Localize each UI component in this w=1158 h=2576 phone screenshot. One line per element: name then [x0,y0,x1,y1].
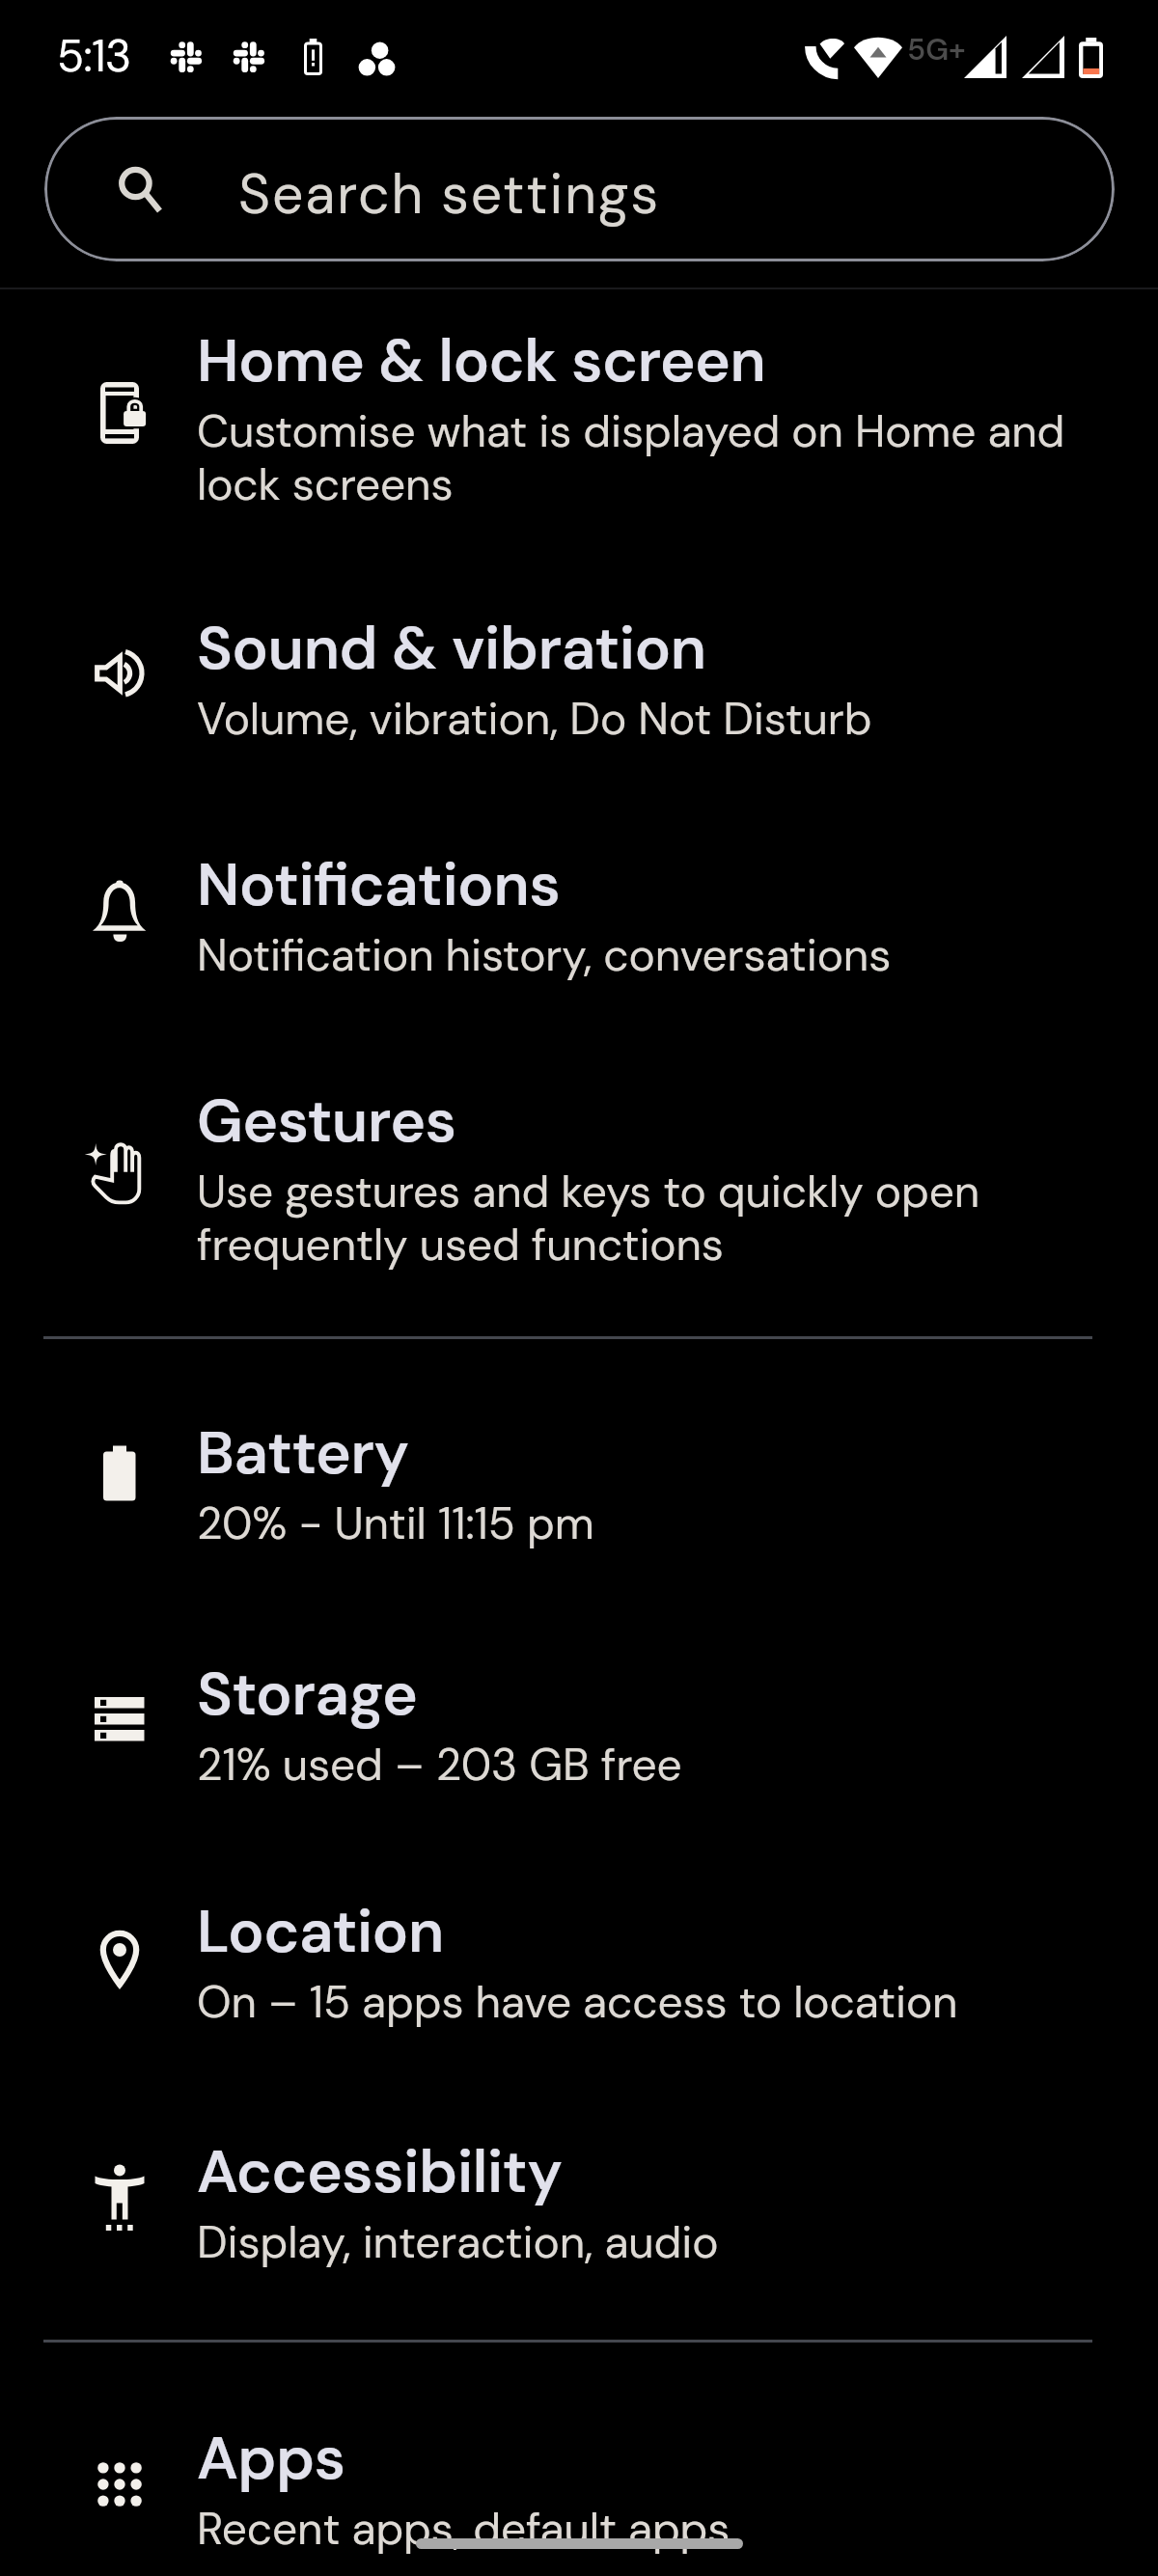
staticText: Customise what is displayed on Home and … [197,406,1094,512]
staticText: Apps [197,2425,345,2496]
staticText: 5:13 [57,30,131,84]
staticText: Display, interaction, audio [197,2217,719,2270]
other: Mobile signal [964,36,1006,78]
staticText: Search settings [238,162,661,230]
other: Battery alert [304,39,322,75]
button[interactable] [0,2094,1158,2331]
other: Slack [168,38,206,76]
other: Battery [1079,38,1103,78]
staticText: Notification history, conversations [197,930,892,983]
button[interactable] [0,570,1158,808]
staticText: Battery [197,1419,409,1491]
staticText: Volume, vibration, Do Not Disturb [197,694,872,747]
staticText: Location [197,1898,444,1969]
staticText: Recent apps, default apps [197,2504,731,2557]
staticText: Home & lock screen [197,327,766,398]
staticText: Accessibility [197,2138,563,2209]
staticText: Storage [197,1660,418,1732]
button[interactable] [0,1853,1158,2091]
button[interactable] [0,1043,1158,1332]
button[interactable] [0,283,1158,572]
staticText: Gestures [197,1087,456,1159]
other: Slack [231,38,268,76]
button[interactable] [0,2380,1158,2576]
staticText: 5G+ [907,26,966,70]
staticText: Use gestures and keys to quickly open fr… [197,1166,1094,1273]
staticText: 20% - Until 11:15 pm [197,1498,594,1551]
staticText: 21% used – 203 GB free [197,1740,682,1793]
button[interactable] [0,1616,1158,1853]
other: Notifications [358,42,396,75]
button[interactable] [0,1375,1158,1612]
other: Wi-Fi [854,37,902,78]
staticText: Sound & vibration [197,615,706,686]
button[interactable] [0,807,1158,1044]
staticText: On – 15 apps have access to location [197,1977,958,2030]
other: Mobile signal [1022,36,1064,78]
button[interactable]: Search [44,117,1115,261]
staticText: Notifications [197,851,561,922]
other: Search [114,162,160,208]
other: Call over Wi-Fi [805,39,844,80]
